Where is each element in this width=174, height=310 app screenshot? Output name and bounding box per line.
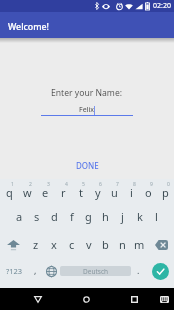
button[interactable]: Shift bbox=[0, 232, 27, 258]
button[interactable]: x bbox=[45, 232, 63, 258]
staticText: 8 bbox=[133, 181, 136, 188]
staticText: d bbox=[51, 209, 58, 224]
button[interactable]: DONE bbox=[68, 157, 107, 174]
staticText: y bbox=[95, 185, 101, 200]
staticText: 3 bbox=[47, 181, 50, 188]
button[interactable]: Deutsch bbox=[60, 256, 131, 286]
button[interactable]: c bbox=[63, 232, 80, 258]
button[interactable]: 7 bbox=[106, 179, 123, 205]
button[interactable]: k bbox=[131, 205, 148, 232]
button[interactable]: f bbox=[63, 205, 80, 232]
staticText: x bbox=[51, 237, 57, 252]
staticText: 6 bbox=[99, 181, 102, 188]
staticText: Deutsch bbox=[83, 267, 109, 276]
button[interactable]: g bbox=[80, 205, 97, 232]
button[interactable]: j bbox=[114, 205, 131, 232]
button[interactable]: , bbox=[28, 256, 43, 286]
staticText: DONE bbox=[76, 160, 99, 171]
staticText: w bbox=[23, 185, 32, 200]
staticText: q bbox=[6, 185, 13, 200]
staticText: Felix bbox=[79, 105, 94, 115]
staticText: g bbox=[85, 209, 92, 224]
staticText: 5 bbox=[82, 181, 85, 188]
staticText: e bbox=[42, 185, 49, 200]
button[interactable]: Backspace bbox=[148, 232, 174, 258]
staticText: , bbox=[34, 264, 37, 276]
staticText: o bbox=[145, 185, 152, 200]
button[interactable]: Back bbox=[26, 288, 50, 310]
button[interactable]: 0 bbox=[157, 179, 174, 205]
button[interactable]: 4 bbox=[54, 179, 72, 205]
staticText: n bbox=[119, 237, 126, 252]
staticText: k bbox=[137, 209, 143, 224]
button[interactable]: d bbox=[46, 205, 63, 232]
button[interactable]: Enter bbox=[146, 256, 174, 286]
staticText: l bbox=[155, 209, 158, 224]
staticText: 02:20 bbox=[153, 1, 171, 11]
button[interactable]: 1 bbox=[0, 179, 18, 205]
staticText: 2 bbox=[29, 181, 32, 188]
staticText: c bbox=[69, 237, 75, 252]
button[interactable]: 6 bbox=[89, 179, 106, 205]
staticText: f bbox=[70, 209, 74, 224]
button[interactable]: Felix bbox=[41, 105, 133, 116]
button[interactable]: b bbox=[97, 232, 114, 258]
button[interactable]: Switch keyboard bbox=[152, 288, 174, 310]
staticText: 0 bbox=[167, 181, 170, 188]
button[interactable]: 9 bbox=[140, 179, 157, 205]
button[interactable]: h bbox=[97, 205, 114, 232]
staticText: z bbox=[33, 237, 39, 252]
staticText: a bbox=[16, 209, 23, 224]
staticText: p bbox=[162, 185, 169, 200]
button[interactable]: v bbox=[80, 232, 97, 258]
staticText: 7 bbox=[116, 181, 119, 188]
button[interactable]: s bbox=[28, 205, 46, 232]
staticText: v bbox=[86, 237, 92, 252]
staticText: Enter your Name: bbox=[51, 87, 123, 99]
staticText: t bbox=[79, 185, 83, 200]
button[interactable]: a bbox=[10, 205, 28, 232]
staticText: m bbox=[134, 237, 145, 252]
staticText: j bbox=[121, 209, 124, 224]
staticText: h bbox=[102, 209, 109, 224]
button[interactable]: 5 bbox=[72, 179, 89, 205]
staticText: i bbox=[130, 185, 133, 200]
staticText: 1 bbox=[11, 181, 14, 188]
staticText: b bbox=[102, 237, 109, 252]
staticText: . bbox=[137, 264, 140, 276]
button[interactable]: 8 bbox=[123, 179, 140, 205]
staticText: r bbox=[61, 185, 66, 200]
button[interactable]: Recent apps bbox=[122, 288, 146, 310]
button[interactable]: Change language bbox=[43, 256, 60, 286]
button[interactable]: m bbox=[131, 232, 148, 258]
button[interactable]: . bbox=[131, 256, 146, 286]
staticText: u bbox=[111, 185, 118, 200]
staticText: Welcome! bbox=[8, 21, 50, 33]
button[interactable]: l bbox=[148, 205, 165, 232]
staticText: 9 bbox=[150, 181, 153, 188]
staticText: 4 bbox=[65, 181, 68, 188]
button[interactable]: 3 bbox=[36, 179, 54, 205]
button[interactable]: z bbox=[27, 232, 45, 258]
button[interactable]: 2 bbox=[18, 179, 36, 205]
staticText: ?123 bbox=[6, 266, 23, 276]
button[interactable]: ?123 bbox=[0, 256, 28, 286]
button[interactable]: Home bbox=[74, 288, 98, 310]
button[interactable]: n bbox=[114, 232, 131, 258]
staticText: s bbox=[34, 209, 40, 224]
